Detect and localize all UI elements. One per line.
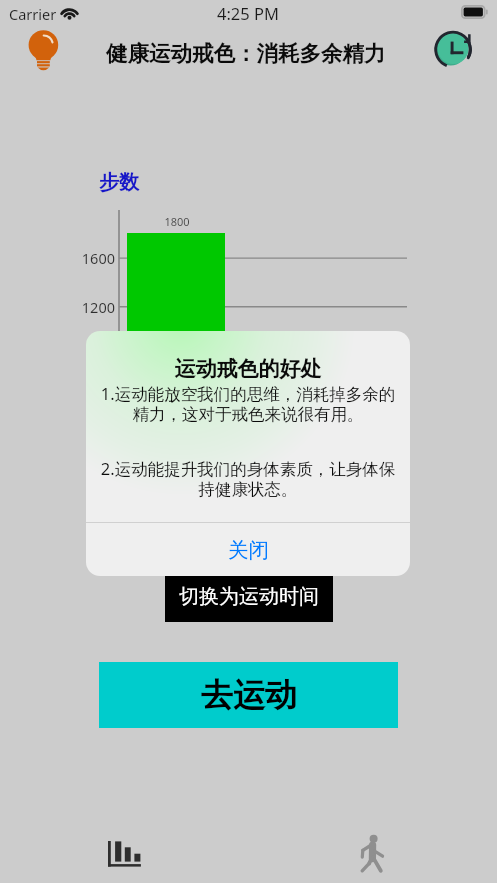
button[interactable]: Statistics <box>91 828 157 878</box>
staticText: 1.运动能放空我们的思维，消耗掉多余的精力，这对于戒色来说很有用。 <box>96 382 400 425</box>
staticText: 1600 <box>55 248 115 268</box>
staticText: 1200 <box>55 297 115 317</box>
staticText: 健康运动戒色：消耗多余精力 <box>106 40 386 67</box>
button[interactable]: 去运动 <box>99 662 398 728</box>
button[interactable]: Tips <box>21 27 66 72</box>
staticText: 关闭 <box>228 537 269 563</box>
button[interactable]: Exercise <box>339 828 405 878</box>
staticText: 去运动 <box>201 675 297 715</box>
button[interactable]: 关闭 <box>86 523 410 576</box>
button[interactable]: 切换为运动时间 <box>165 576 333 622</box>
staticText: Carrier <box>9 4 57 24</box>
staticText: 2.运动能提升我们的身体素质，让身体保持健康状态。 <box>96 457 400 500</box>
staticText: 切换为运动时间 <box>179 584 319 609</box>
button[interactable]: History <box>430 27 475 72</box>
staticText: 1800 <box>147 214 207 229</box>
staticText: 4:25 PM <box>217 2 279 24</box>
staticText: 运动戒色的好处 <box>86 356 410 382</box>
staticText: 步数 <box>99 170 139 195</box>
